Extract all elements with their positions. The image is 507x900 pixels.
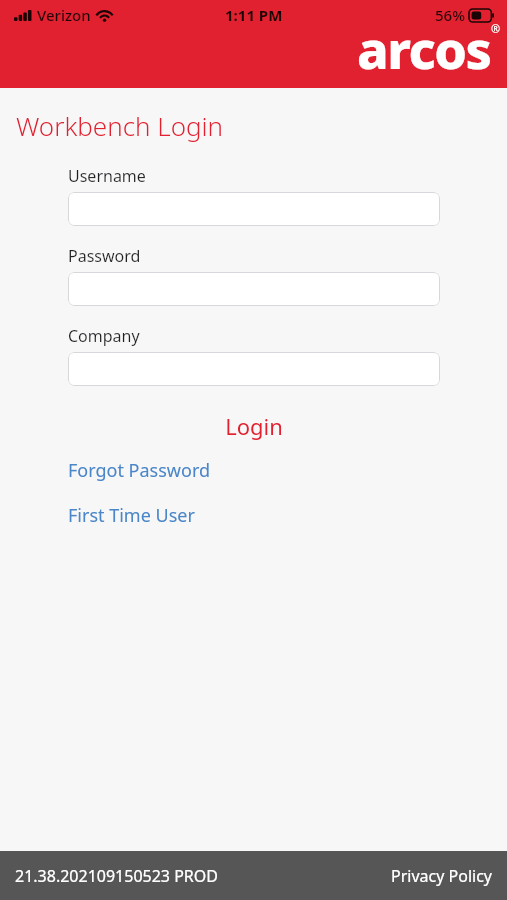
staticText: Privacy Policy	[391, 865, 492, 887]
staticText: 21.38.202109150523 PROD	[15, 865, 218, 887]
staticText: ®	[491, 21, 501, 36]
staticText: 1:11 PM	[225, 5, 283, 25]
button[interactable]: Login	[68, 408, 440, 444]
button[interactable]: Username	[68, 192, 440, 226]
staticText: Workbench Login	[16, 108, 224, 143]
staticText: 56%	[435, 5, 465, 25]
button[interactable]: Forgot Password	[68, 458, 211, 483]
staticText: First Time User	[68, 503, 195, 528]
staticText: arcos	[357, 13, 491, 84]
staticText: Verizon	[37, 5, 91, 25]
staticText: Login	[225, 411, 283, 441]
button[interactable]: Password	[68, 272, 440, 306]
staticText: Forgot Password	[68, 458, 211, 483]
button[interactable]: Privacy Policy	[391, 865, 492, 887]
button[interactable]: First Time User	[68, 503, 195, 528]
staticText: Company	[68, 325, 140, 347]
staticText: Username	[68, 165, 146, 187]
button[interactable]: Company	[68, 352, 440, 386]
staticText: Password	[68, 245, 141, 267]
